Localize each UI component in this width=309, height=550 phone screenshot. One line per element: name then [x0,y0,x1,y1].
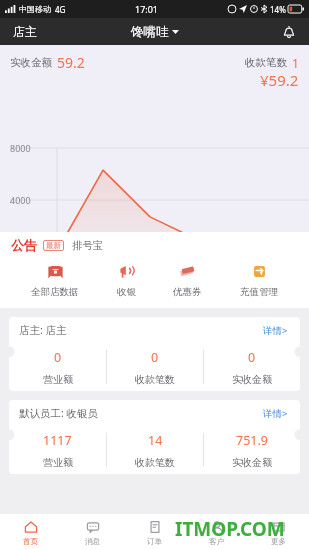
button[interactable]: 店主 [10,20,40,43]
staticText: 订单 [147,537,162,546]
staticText: 1117 [43,432,72,449]
staticText: 排号宝 [72,239,104,252]
button[interactable]: 更多 [247,514,309,550]
button[interactable]: Notifications [279,22,299,42]
button[interactable]: 店主: 店主 [9,317,300,391]
staticText: 客户 [209,537,224,546]
staticText: ITMOP.COM [175,516,285,542]
staticText: 实收金额 [232,373,272,386]
staticText: 首页 [23,537,38,546]
button[interactable]: 首页 [0,514,61,550]
button[interactable]: 消息 [61,514,123,550]
staticText: 优惠券 [173,286,202,298]
staticText: 中国移动 [19,4,51,14]
button[interactable]: 优惠券 [167,260,208,300]
button[interactable]: 详情> [261,405,290,422]
staticText: 实收金额 [232,456,272,469]
staticText: 店主: 店主 [19,323,67,337]
staticText: 全部店数据 [31,286,79,298]
staticText: 59.2 [57,53,85,72]
staticText: 14% [270,4,286,15]
staticText: 默认员工: 收银员 [19,406,99,420]
staticText: ¥59.2 [260,70,299,90]
staticText: 8000 [10,142,31,154]
staticText: 收款笔数 [135,456,175,469]
staticText: 营业额 [43,456,73,469]
staticText: 充值管理 [240,286,278,298]
staticText: 0 [248,349,256,366]
staticText: 最新 [46,241,61,250]
staticText: 营业额 [43,373,73,386]
staticText: 0 [151,349,159,366]
button[interactable]: 公告 [0,232,309,258]
staticText: 14 [148,432,163,449]
staticText: 1 [292,55,299,71]
staticText: 馋嘴哇 [131,24,169,40]
staticText: 收款笔数 [135,373,175,386]
button[interactable]: 默认员工: 收银员 [9,400,300,474]
button[interactable]: 订单 [123,514,185,550]
staticText: 详情> [263,407,288,420]
button[interactable]: 客户 [185,514,247,550]
staticText: 公告 [11,237,37,253]
staticText: 详情> [263,324,288,337]
staticText: 收银 [117,286,136,298]
staticText: 收款笔数 [245,56,287,69]
staticText: 店主 [13,24,37,39]
staticText: 0 [54,349,62,366]
staticText: 751.9 [236,432,268,449]
button[interactable]: 充值管理 [234,260,284,300]
staticText: 4G [55,4,66,15]
button[interactable]: 详情> [261,322,290,339]
staticText: 17:01 [135,3,159,15]
button[interactable]: 收银 [111,260,142,300]
button[interactable]: 馋嘴哇 [125,20,185,44]
staticText: 消息 [85,537,100,546]
staticText: 4000 [10,194,31,206]
button[interactable]: 全部店数据 [25,260,85,300]
staticText: 更多 [271,537,286,546]
staticText: 实收金额 [10,56,52,69]
